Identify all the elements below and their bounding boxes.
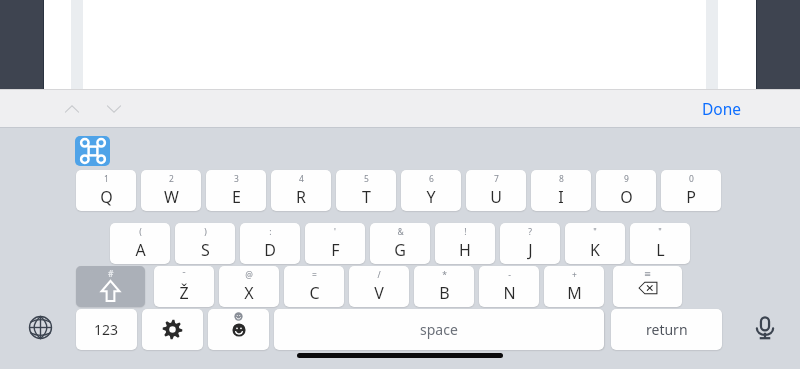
button[interactable]: 4	[271, 170, 331, 211]
staticText: ?	[528, 226, 532, 238]
staticText: K	[590, 239, 600, 261]
button[interactable]: 1	[76, 170, 136, 211]
button[interactable]: -	[479, 266, 539, 307]
staticText: I	[558, 186, 564, 208]
staticText: *	[442, 269, 447, 281]
staticText: :	[269, 226, 272, 238]
staticText: B	[439, 282, 450, 304]
button[interactable]: Command	[75, 136, 110, 166]
button[interactable]: *	[414, 266, 474, 307]
button[interactable]: space	[274, 309, 604, 350]
staticText: F	[331, 239, 340, 261]
button[interactable]: return	[611, 309, 722, 350]
staticText: S	[201, 239, 210, 261]
staticText: 9	[624, 173, 629, 185]
staticText: @	[245, 269, 253, 281]
staticText: O	[620, 186, 633, 208]
staticText: 123	[94, 320, 119, 339]
staticText: W	[164, 186, 179, 208]
staticText: (	[139, 226, 142, 238]
button[interactable]: 9	[596, 170, 656, 211]
staticText: R	[296, 186, 306, 208]
button[interactable]: ̄	[154, 266, 214, 307]
staticText: U	[490, 186, 502, 208]
staticText: ≡	[644, 269, 652, 279]
staticText: "	[658, 226, 662, 238]
staticText: D	[264, 239, 276, 261]
staticText: A	[135, 239, 146, 261]
staticText: 5	[364, 173, 369, 185]
staticText: +	[572, 269, 577, 281]
staticText: Q	[100, 186, 113, 208]
button[interactable]: Previous field	[56, 95, 88, 123]
button[interactable]: Numbers	[76, 309, 137, 350]
button[interactable]: 3	[206, 170, 266, 211]
staticText: "	[593, 226, 597, 238]
button[interactable]: 6	[401, 170, 461, 211]
button[interactable]: Delete	[613, 266, 682, 307]
staticText: 1	[104, 173, 109, 185]
button[interactable]: Dictate	[745, 308, 785, 348]
staticText: 8	[559, 173, 564, 185]
staticText: space	[420, 320, 458, 339]
staticText: N	[503, 282, 516, 304]
staticText: P	[686, 186, 696, 208]
button[interactable]: +	[544, 266, 604, 307]
staticText: =	[312, 269, 317, 281]
staticText: 7	[494, 173, 499, 185]
button[interactable]: /	[349, 266, 409, 307]
staticText: Done	[702, 98, 742, 119]
staticText: E	[232, 186, 241, 208]
button[interactable]: Next field	[98, 95, 130, 123]
button[interactable]: ?	[500, 223, 560, 264]
staticText: L	[656, 239, 665, 261]
staticText: /	[377, 269, 381, 281]
button[interactable]: 2	[141, 170, 201, 211]
staticText: C	[309, 282, 320, 304]
staticText: Y	[426, 186, 436, 208]
staticText: !	[464, 226, 467, 238]
button[interactable]: "	[565, 223, 625, 264]
button[interactable]: @	[219, 266, 279, 307]
staticText: '	[334, 226, 336, 238]
button[interactable]: )	[175, 223, 235, 264]
button[interactable]: !	[435, 223, 495, 264]
button[interactable]: &	[370, 223, 430, 264]
button[interactable]: '	[305, 223, 365, 264]
staticText: -	[508, 269, 511, 281]
staticText: 0	[689, 173, 694, 185]
staticText: M	[567, 282, 582, 304]
button[interactable]: :	[240, 223, 300, 264]
button[interactable]: Emoji	[208, 309, 269, 350]
button[interactable]: Done	[686, 93, 758, 123]
staticText: 6	[429, 173, 434, 185]
button[interactable]: =	[284, 266, 344, 307]
staticText: X	[244, 282, 254, 304]
button[interactable]: 7	[466, 170, 526, 211]
staticText: H	[459, 239, 471, 261]
staticText: #	[108, 268, 114, 280]
staticText: Ž	[179, 282, 189, 304]
staticText: return	[646, 320, 688, 339]
button[interactable]: 8	[531, 170, 591, 211]
staticText: T	[362, 186, 371, 208]
button[interactable]: 5	[336, 170, 396, 211]
staticText: G	[394, 239, 406, 261]
button[interactable]: Next keyboard	[20, 310, 60, 344]
button[interactable]: Keyboard settings	[142, 309, 203, 350]
staticText: 3	[234, 173, 239, 185]
staticText: V	[374, 282, 384, 304]
button[interactable]: Shift	[76, 266, 145, 307]
button[interactable]: "	[630, 223, 690, 264]
staticText: )	[204, 226, 207, 238]
staticText: 2	[169, 173, 174, 185]
staticText: 4	[299, 173, 304, 185]
staticText: J	[528, 239, 533, 261]
staticText: &	[397, 226, 404, 238]
button[interactable]: 0	[661, 170, 721, 211]
button[interactable]: (	[110, 223, 170, 264]
